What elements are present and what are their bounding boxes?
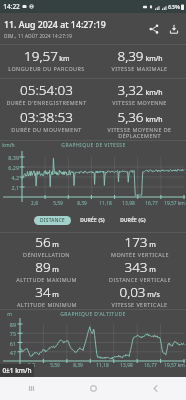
button[interactable]: DURÉE (S) [74, 216, 111, 225]
staticText: DURÉE (G) [120, 217, 146, 224]
staticText: LONGUEUR DU PARCOURS [8, 65, 85, 72]
staticText: VITESSE VERTICALE [111, 301, 168, 308]
staticText: 47 [2, 349, 16, 356]
button[interactable]: Home [62, 377, 124, 400]
staticText: m [52, 290, 59, 300]
staticText: 2,1 [1, 184, 19, 191]
staticText: VITESSE MAXIMALE [111, 65, 168, 72]
staticText: 11,18 [99, 200, 112, 207]
staticText: 4,2 [1, 174, 19, 181]
staticText: 34 [35, 283, 51, 301]
button[interactable]: Back [124, 377, 186, 400]
staticText: DIM., 11 AOÛT 2024 14:27:19 [4, 33, 73, 39]
button[interactable]: Download [164, 19, 184, 39]
staticText: 61 [2, 340, 16, 347]
staticText: km/h [145, 88, 163, 98]
staticText: 0±1 km/h [2, 366, 32, 375]
staticText: DÉNIVELLATION [23, 251, 70, 258]
staticText: 89 [35, 258, 51, 276]
staticText: 03:38:53 [20, 108, 73, 126]
staticText: 14:22 [3, 2, 20, 11]
staticText: 2,8 [31, 200, 38, 207]
staticText: MONTÉE VERTICALE [111, 251, 169, 258]
staticText: ALTITUDE MAXIMUM [16, 276, 77, 283]
staticText: DISTANCE VERTICALE [109, 276, 171, 283]
staticText: 8,39 [77, 200, 87, 207]
button[interactable]: DURÉE (G) [114, 216, 152, 225]
staticText: DURÉE DU MOUVEMENT [11, 126, 82, 133]
staticText: m [149, 265, 156, 275]
staticText: 16,77 [145, 200, 158, 207]
staticText: km [59, 54, 70, 64]
button[interactable]: Recent apps [0, 377, 62, 400]
staticText: DISTANCE [40, 217, 65, 224]
staticText: 19,57 km [164, 200, 185, 207]
staticText: km/h [145, 54, 163, 64]
staticText: 11,18 [96, 362, 109, 369]
staticText: 19,57 km [164, 362, 185, 369]
staticText: VITESSE MOYENNE DE DÉPLACEMENT [107, 126, 172, 139]
staticText: VITESSE MOYENNE [112, 99, 167, 106]
staticText: km/h [2, 142, 15, 149]
staticText: DURÉE D'ENREGISTREMENT [6, 99, 87, 106]
staticText: 19,57 [24, 47, 58, 65]
staticText: 56 [35, 233, 51, 251]
staticText: 11. Aug 2024 at 14:27:19 [4, 19, 106, 31]
staticText: 6,29 [1, 164, 19, 171]
staticText: m [52, 265, 59, 275]
staticText: m [149, 240, 156, 250]
staticText: m [52, 240, 59, 250]
button[interactable]: Share [144, 19, 164, 39]
staticText: DURÉE (S) [80, 217, 105, 224]
staticText: ALTITUDE MINIMUM [17, 301, 77, 308]
staticText: 8,39 [73, 362, 83, 369]
staticText: 63% [168, 3, 180, 11]
staticText: km/h [145, 115, 163, 125]
staticText: m [7, 311, 12, 318]
staticText: 5,59 [53, 200, 63, 207]
button[interactable]: DISTANCE [34, 216, 71, 225]
staticText: 13,98 [122, 200, 135, 207]
staticText: GRAPHIQUE D'ALTITUDE [60, 311, 126, 318]
staticText: 173 [124, 233, 148, 251]
staticText: 5,36 [117, 108, 144, 126]
staticText: 343 [124, 258, 148, 276]
staticText: m/s [147, 290, 160, 300]
staticText: 8,39 [1, 154, 19, 161]
staticText: 3,32 [117, 81, 144, 99]
staticText: 5,59 [50, 362, 60, 369]
staticText: 16,77 [144, 362, 157, 369]
staticText: 8,39 [117, 47, 144, 65]
staticText: GRAPHIQUE DE VITESSE [61, 142, 126, 149]
staticText: 0,03 [119, 283, 146, 301]
staticText: 2,8 [28, 362, 35, 369]
staticText: 05:54:03 [20, 81, 73, 99]
staticText: 89 [2, 321, 16, 328]
staticText: 75 [2, 330, 16, 337]
staticText: 13,98 [120, 362, 133, 369]
